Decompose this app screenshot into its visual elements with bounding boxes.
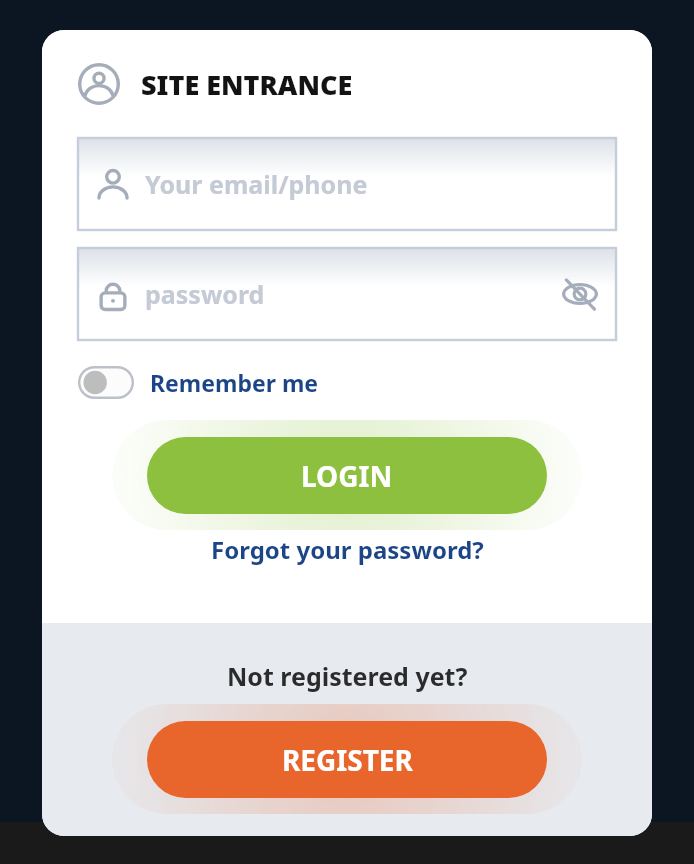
staticText: Not registered yet?	[227, 659, 468, 693]
button[interactable]: Remember me	[78, 366, 319, 399]
button[interactable]: REGISTER	[147, 721, 547, 798]
other: Show password	[561, 275, 599, 313]
staticText: SITE ENTRANCE	[141, 66, 353, 103]
staticText: Forgot your password?	[211, 533, 484, 566]
staticText: Remember me	[150, 367, 319, 398]
staticText: password	[145, 277, 265, 311]
button[interactable]: Forgot your password?	[203, 530, 492, 569]
button[interactable]: Show password	[561, 275, 599, 313]
staticText: REGISTER	[282, 741, 413, 779]
button[interactable]: password	[78, 248, 616, 340]
button[interactable]: Your email/phone	[78, 138, 616, 230]
button[interactable]: LOGIN	[147, 437, 547, 514]
staticText: Your email/phone	[145, 167, 368, 201]
staticText: LOGIN	[301, 457, 393, 495]
